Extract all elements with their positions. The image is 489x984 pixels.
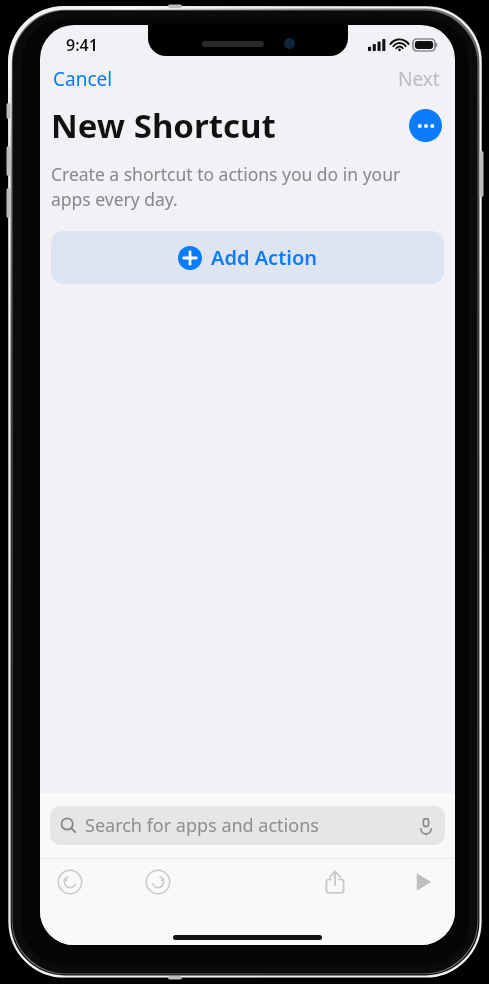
button[interactable]: Undo [48,860,92,904]
staticText: 9:41 [66,34,98,56]
staticText: Search for apps and actions [85,813,319,838]
button[interactable]: Run [401,860,445,904]
staticText: Create a shortcut to actions you do in y… [51,162,439,212]
button[interactable]: Next [396,62,442,96]
button[interactable]: Add Action [51,231,444,284]
staticText: New Shortcut [51,103,276,148]
button[interactable]: More options [409,109,442,142]
button[interactable]: Cancel [51,62,115,96]
staticText: Add Action [211,244,318,271]
other: Voice search [416,816,436,836]
button[interactable]: Share [313,860,357,904]
button[interactable]: Search for apps and actions [50,806,445,845]
button[interactable]: Redo [136,860,180,904]
staticText: Cancel [53,66,113,92]
staticText: Next [398,66,440,92]
